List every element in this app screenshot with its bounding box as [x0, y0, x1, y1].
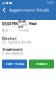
staticText: Doctor	[2, 35, 17, 41]
staticText: Status	[18, 18, 27, 29]
staticText: Appointment Details	[9, 7, 49, 13]
staticText: Mon 12 Apr	[2, 22, 15, 33]
staticText: Dr. Sandra Smith	[2, 39, 31, 44]
staticText: VIEW PROFILE	[5, 62, 23, 66]
staticText: Consultation	[2, 50, 23, 55]
staticText: Confirmed	[18, 22, 28, 33]
button[interactable]: Back	[1, 6, 7, 14]
staticText: 01:03 PM	[2, 21, 18, 26]
button[interactable]: MESSAGE	[29, 59, 54, 68]
button[interactable]: VIEW PROFILE	[2, 59, 27, 68]
staticText: Paid	[29, 21, 37, 26]
staticText: Treatment	[2, 46, 23, 52]
staticText: MESSAGE	[36, 62, 47, 66]
staticText: 9:41	[47, 1, 54, 5]
